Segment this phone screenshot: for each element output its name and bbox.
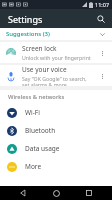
staticText: Wi-Fi — [25, 108, 40, 117]
button[interactable]: More options — [97, 71, 107, 81]
staticText: More — [25, 162, 42, 171]
button[interactable]: More — [0, 157, 112, 175]
staticText: Use your voice — [22, 65, 67, 74]
button[interactable]: More options — [97, 48, 107, 58]
staticText: 11:07 — [95, 1, 110, 8]
button[interactable]: Use your voice — [0, 65, 112, 86]
button[interactable]: Search — [94, 12, 108, 26]
button[interactable]: Data usage — [0, 139, 112, 157]
button[interactable]: Bluetooth — [0, 121, 112, 139]
button[interactable]: Suggestions (3) — [0, 28, 112, 40]
staticText: Suggestions (3) — [6, 30, 50, 38]
staticText: Data usage — [25, 144, 60, 153]
button[interactable]: Screen lock — [0, 42, 112, 63]
staticText: Wireless & networks — [8, 93, 65, 101]
button[interactable]: Recent apps — [79, 186, 99, 200]
staticText: Bluetooth — [25, 126, 56, 135]
staticText: Say “OK Google” to search, set alarms & … — [22, 75, 94, 86]
button[interactable]: Back — [13, 186, 33, 200]
staticText: Settings — [8, 13, 43, 25]
staticText: Screen lock — [22, 44, 57, 53]
staticText: Unlock with your fingerprint — [22, 54, 91, 61]
button[interactable]: Home — [46, 186, 66, 200]
button[interactable]: Wi-Fi — [0, 103, 112, 121]
